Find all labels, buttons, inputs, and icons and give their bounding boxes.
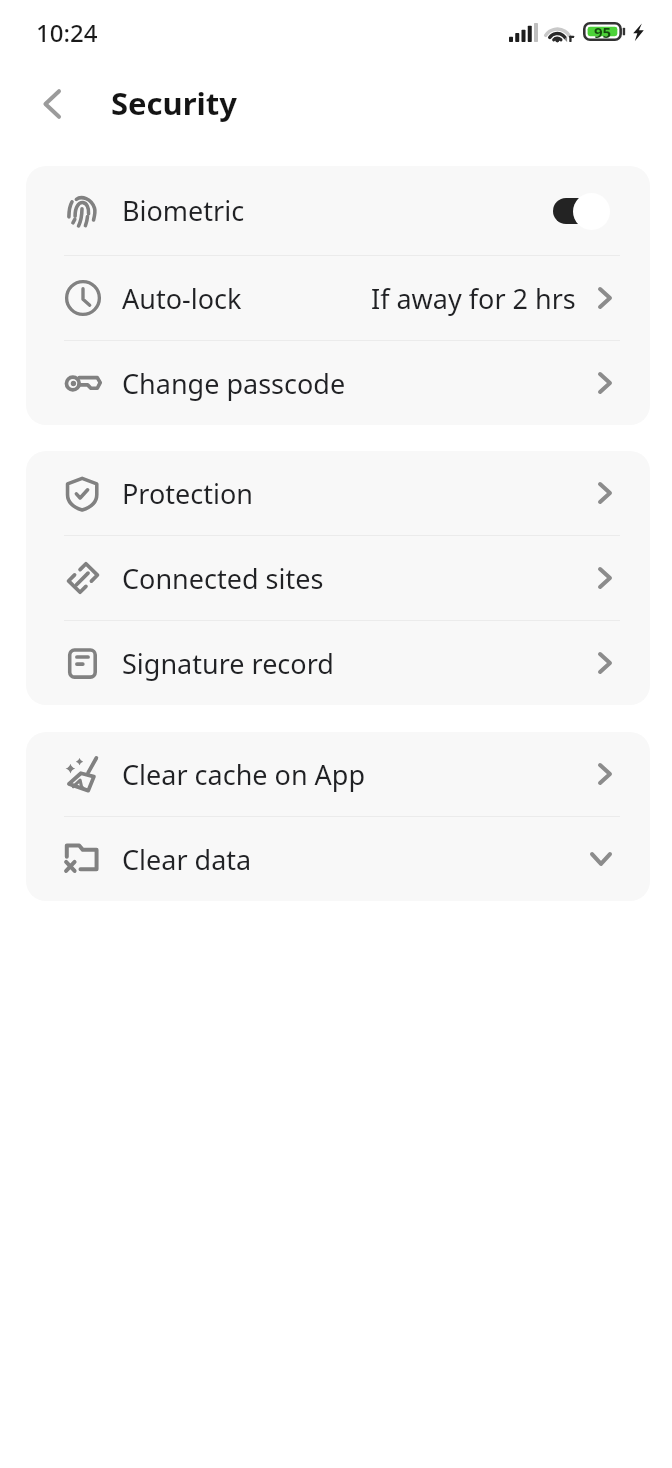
staticText: Biometric — [122, 192, 245, 229]
button[interactable]: Protection — [26, 451, 650, 535]
staticText: 10:24 — [36, 16, 98, 49]
button[interactable]: Auto-lock — [26, 256, 650, 340]
staticText: 95 — [594, 22, 612, 41]
staticText: Protection — [122, 475, 253, 512]
staticText: Clear data — [122, 841, 252, 878]
staticText: Security — [111, 82, 238, 124]
button[interactable]: Connected sites — [26, 536, 650, 620]
staticText: Clear cache on App — [122, 756, 366, 793]
staticText: Change passcode — [122, 365, 346, 402]
button[interactable]: Back — [21, 72, 85, 136]
button[interactable]: Clear cache on App — [26, 732, 650, 816]
staticText: Signature record — [122, 645, 334, 682]
button[interactable]: Signature record — [26, 621, 650, 705]
staticText: Auto-lock — [122, 280, 242, 317]
staticText: If away for 2 hrs — [371, 280, 576, 317]
button[interactable]: Biometric — [26, 166, 650, 255]
button[interactable]: Change passcode — [26, 341, 650, 425]
staticText: Connected sites — [122, 560, 324, 597]
button[interactable]: Clear data — [26, 817, 650, 901]
button[interactable]: Biometric toggle — [553, 192, 610, 230]
